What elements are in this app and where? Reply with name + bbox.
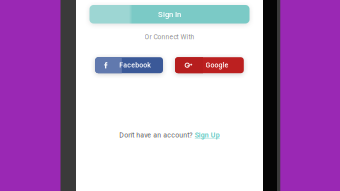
staticText: Or Connect With (144, 33, 194, 41)
staticText: Facebook (119, 61, 151, 69)
staticText: Sign In (158, 10, 181, 19)
button[interactable]: Google (175, 57, 244, 73)
staticText: Don't have an account? (119, 131, 192, 139)
button[interactable]: Don't have an account? (119, 131, 220, 139)
button[interactable]: Facebook (95, 57, 163, 73)
button[interactable]: Sign In (89, 5, 249, 23)
staticText: Google (205, 61, 228, 69)
staticText: Sign Up (195, 131, 220, 139)
